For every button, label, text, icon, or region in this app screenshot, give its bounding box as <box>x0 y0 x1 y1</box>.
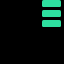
button[interactable]: Workout <box>42 20 61 27</box>
button[interactable]: Heart rate <box>42 10 61 17</box>
button[interactable]: Steps <box>42 0 61 7</box>
